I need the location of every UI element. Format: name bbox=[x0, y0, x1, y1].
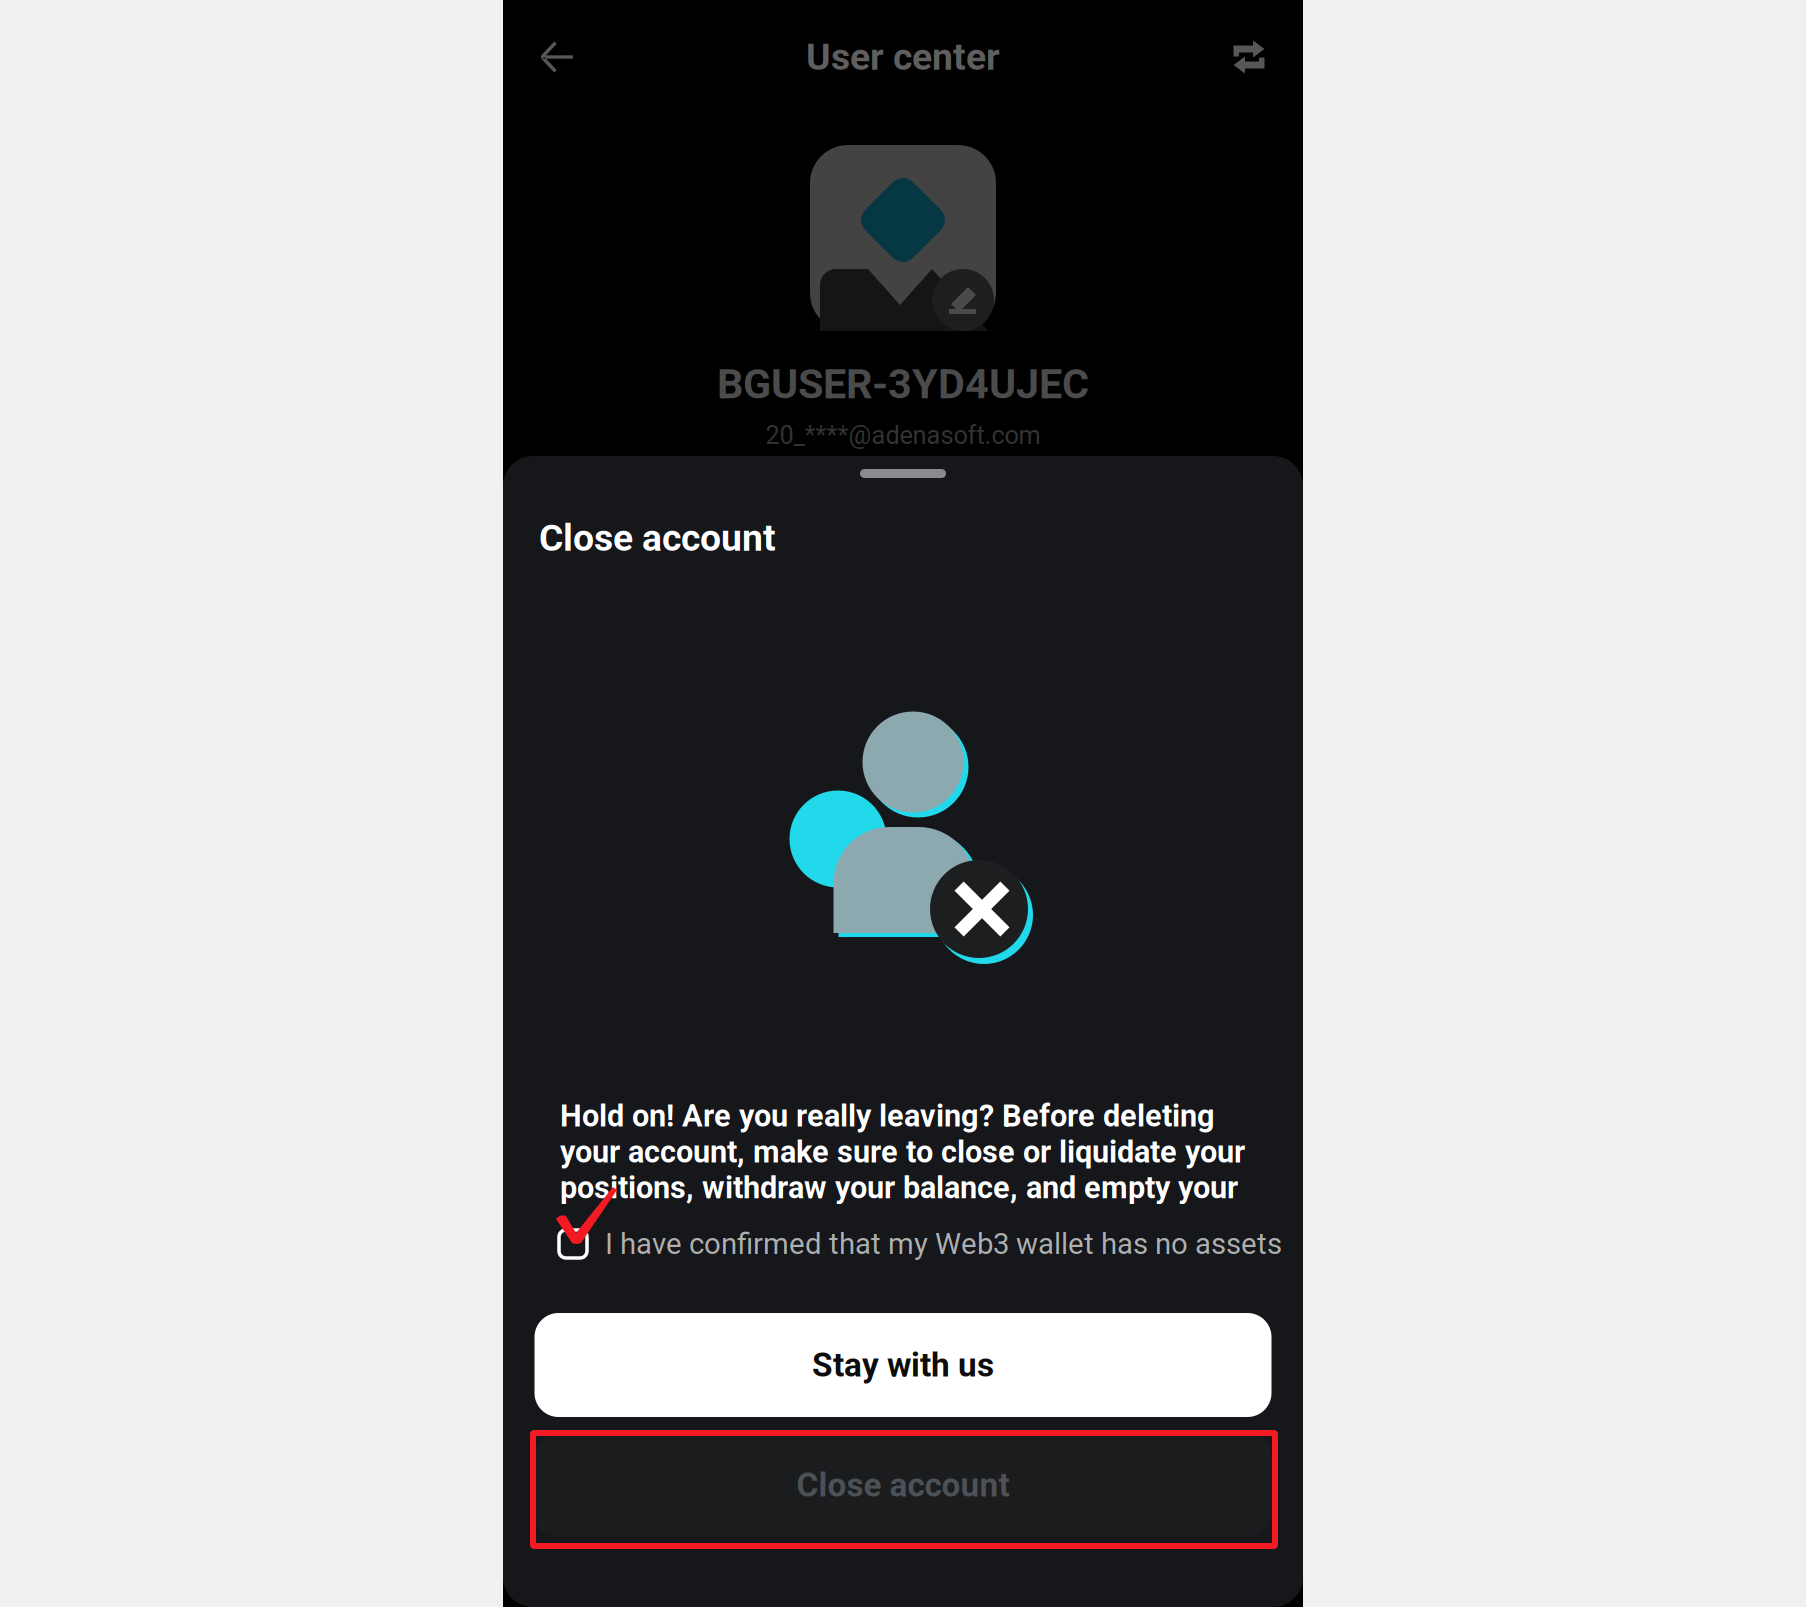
staticText: BGUSER-3YD4UJEC bbox=[717, 360, 1089, 408]
button[interactable]: Close account bbox=[534, 1433, 1271, 1537]
button[interactable]: Stay with us bbox=[534, 1313, 1271, 1417]
staticText: Hold on! Are you really leaving? Before … bbox=[560, 1098, 1245, 1206]
button[interactable]: I have confirmed that my Web3 wallet has… bbox=[503, 1222, 1303, 1266]
staticText: 20_****@adenasoft.com bbox=[765, 420, 1040, 450]
button[interactable]: Switch account bbox=[1212, 20, 1286, 94]
staticText: Close account bbox=[539, 516, 776, 560]
staticText: Close account bbox=[796, 1465, 1009, 1505]
button[interactable]: Back bbox=[520, 20, 594, 94]
staticText: I have confirmed that my Web3 wallet has… bbox=[605, 1227, 1282, 1261]
staticText: Stay with us bbox=[812, 1345, 994, 1385]
staticText: User center bbox=[806, 35, 1000, 79]
